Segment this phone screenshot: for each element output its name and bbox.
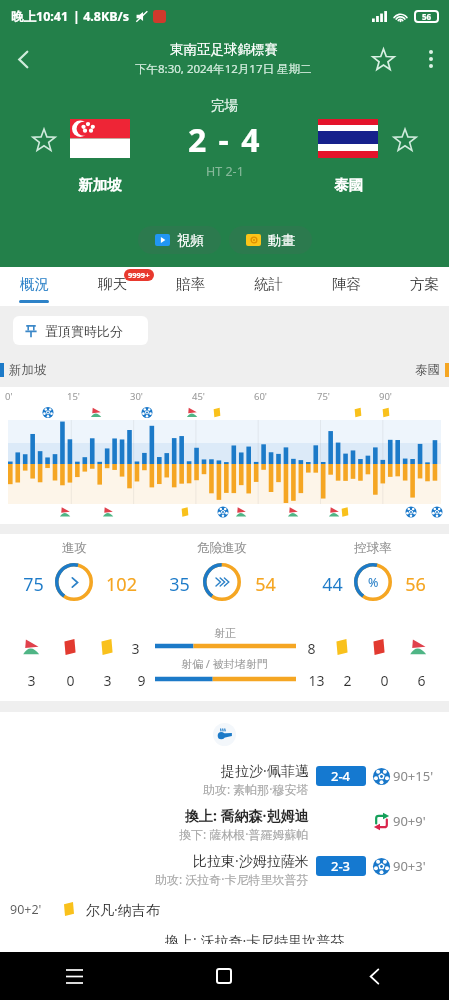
staticText: 90' <box>379 390 393 403</box>
button[interactable]: Back <box>0 36 46 82</box>
staticText: 換下: 薩林根·普羅姆蘇帕 <box>179 826 309 842</box>
staticText: 30' <box>130 390 144 403</box>
button[interactable]: Favorite Thailand <box>385 120 425 160</box>
staticText: 尔凡·纳吉布 <box>86 900 160 919</box>
staticText: 射偏 / 被封堵射門 <box>181 656 268 671</box>
button[interactable]: Favorite <box>363 39 403 79</box>
staticText: 8 <box>307 639 316 658</box>
staticText: 90+3' <box>393 857 426 875</box>
staticText: 3 <box>131 639 140 658</box>
staticText: 助攻: 素帕那·穆安塔 <box>203 781 309 797</box>
button[interactable]: 換上: 喬納森·剋姆迪 <box>0 806 449 850</box>
button[interactable]: Back <box>299 952 449 1000</box>
button[interactable]: 置頂實時比分 <box>13 316 148 345</box>
staticText: 75 <box>23 572 44 597</box>
staticText: 2 - 4 <box>188 118 262 162</box>
staticText: 泰國 <box>415 362 440 378</box>
staticText: 東南亞足球錦標賽 <box>170 41 278 58</box>
button[interactable]: 視頻 <box>138 226 221 254</box>
staticText: 3 <box>103 671 112 690</box>
staticText: 聊天 <box>98 275 127 293</box>
staticText: 概況 <box>20 275 49 293</box>
button[interactable]: More options <box>413 41 449 77</box>
staticText: 44 <box>322 572 343 597</box>
staticText: 陣容 <box>332 275 361 293</box>
staticText: 進攻 <box>62 540 87 556</box>
staticText: 90+2' <box>10 901 42 918</box>
staticText: 54 <box>255 572 276 597</box>
staticText: 45' <box>192 390 206 403</box>
staticText: 控球率 <box>354 540 392 556</box>
button[interactable]: Favorite Singapore <box>24 120 64 160</box>
staticText: 視頻 <box>177 232 204 249</box>
staticText: 統計 <box>254 275 283 293</box>
button[interactable]: 方案 <box>394 267 449 306</box>
staticText: 換上: 喬納森·剋姆迪 <box>185 806 309 825</box>
staticText: 置頂實時比分 <box>45 323 123 339</box>
staticText: 晚上10:41 <box>11 8 69 25</box>
button[interactable]: 概況 <box>4 267 64 306</box>
staticText: 9 <box>137 671 146 690</box>
button[interactable]: 90+2' <box>0 897 449 921</box>
button[interactable]: 陣容 <box>316 267 376 306</box>
staticText: 2-3 <box>331 857 351 875</box>
button[interactable]: 聊天 <box>82 267 142 306</box>
staticText: 動畫 <box>268 232 295 249</box>
staticText: 56 <box>422 11 432 22</box>
staticText: 35 <box>169 572 190 597</box>
staticText: 提拉沙·佩菲邁 <box>221 761 309 780</box>
button[interactable]: 統計 <box>238 267 298 306</box>
staticText: 2-4 <box>331 767 351 785</box>
staticText: 比拉東·沙姆拉薩米 <box>193 851 309 870</box>
staticText: 60' <box>254 390 268 403</box>
staticText: 射正 <box>214 626 236 640</box>
button[interactable]: 賠率 <box>160 267 220 306</box>
staticText: 賠率 <box>176 275 205 293</box>
staticText: 75' <box>317 390 331 403</box>
staticText: 9999+ <box>128 270 150 280</box>
staticText: 102 <box>106 572 137 597</box>
staticText: 56 <box>405 572 426 597</box>
staticText: 完場 <box>211 97 238 114</box>
staticText: 0' <box>5 390 13 403</box>
staticText: 0 <box>66 671 75 690</box>
staticText: 方案 <box>410 275 439 293</box>
staticText: 換上: 沃拉奇·卡尼特里坎普芬 <box>165 931 345 950</box>
staticText: HT 2-1 <box>206 163 244 180</box>
staticText: 3 <box>27 671 36 690</box>
button[interactable]: Recents <box>0 952 149 1000</box>
staticText: 新加坡 <box>9 362 47 378</box>
button[interactable]: Home <box>149 952 299 1000</box>
staticText: 90+15' <box>393 767 434 785</box>
staticText: 6 <box>417 671 426 690</box>
staticText: 新加坡 <box>78 176 122 194</box>
button[interactable]: 提拉沙·佩菲邁 <box>0 761 449 805</box>
staticText: 下午8:30, 2024年12月17日 星期二 <box>135 61 312 77</box>
staticText: 2 <box>343 671 352 690</box>
staticText: | 4.8KB/s <box>73 8 130 25</box>
staticText: 助攻: 沃拉奇·卡尼特里坎普芬 <box>155 871 309 887</box>
staticText: 泰國 <box>334 176 363 194</box>
staticText: % <box>368 574 379 591</box>
staticText: 13 <box>308 671 325 690</box>
staticText: 15' <box>67 390 81 403</box>
button[interactable]: 動畫 <box>229 226 312 254</box>
button[interactable]: 比拉東·沙姆拉薩米 <box>0 851 449 895</box>
staticText: 90+9' <box>393 812 426 830</box>
staticText: 危險進攻 <box>197 540 247 556</box>
staticText: 0 <box>380 671 389 690</box>
